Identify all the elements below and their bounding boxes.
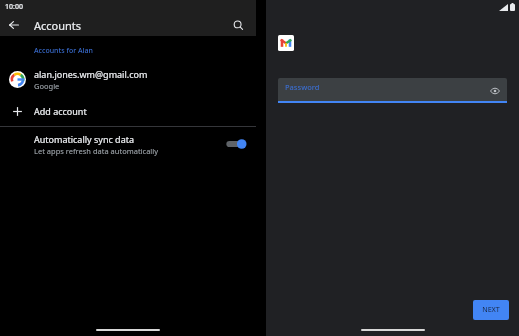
button[interactable]: alan.jones.wm@gmail.com	[0, 64, 256, 94]
staticText: Accounts	[34, 18, 82, 33]
button[interactable]: Back	[4, 15, 24, 35]
staticText: 10:00	[5, 2, 23, 12]
button[interactable]: Add account	[0, 100, 256, 122]
button[interactable]: Password	[278, 78, 507, 105]
staticText: NEXT	[482, 305, 500, 315]
button[interactable]: NEXT	[473, 300, 509, 320]
staticText: Add account	[34, 105, 87, 117]
staticText: Automatically sync data	[34, 133, 134, 145]
button[interactable]: Search	[229, 16, 247, 34]
button[interactable]: Automatically sync data toggle	[225, 137, 247, 151]
button[interactable]: Automatically sync data	[0, 131, 256, 157]
staticText: Accounts for Alan	[34, 46, 93, 56]
staticText: Let apps refresh data automatically	[34, 146, 159, 156]
staticText: alan.jones.wm@gmail.com	[34, 68, 148, 80]
button[interactable]: Show password	[488, 84, 502, 98]
staticText: Password	[285, 82, 320, 92]
staticText: Google	[34, 81, 60, 91]
